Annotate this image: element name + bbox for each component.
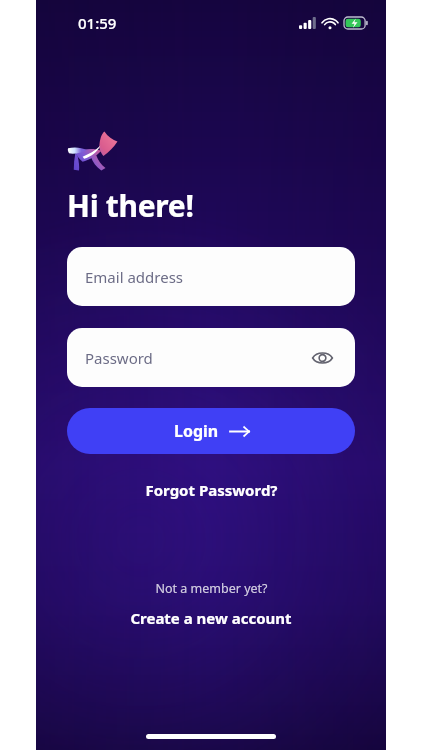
staticText: Not a member yet? bbox=[155, 580, 268, 597]
button[interactable]: Forgot Password? bbox=[135, 476, 288, 504]
button[interactable]: Email address bbox=[67, 247, 355, 306]
button[interactable]: Login bbox=[67, 408, 355, 454]
staticText: Password bbox=[85, 348, 153, 368]
button[interactable]: Show password bbox=[307, 343, 337, 373]
staticText: Login bbox=[174, 420, 219, 442]
staticText: Create a new account bbox=[130, 608, 292, 628]
staticText: Email address bbox=[85, 267, 184, 287]
button[interactable]: Create a new account bbox=[120, 605, 302, 631]
staticText: Forgot Password? bbox=[145, 480, 278, 500]
staticText: 01:59 bbox=[78, 13, 117, 33]
staticText: Hi there! bbox=[67, 185, 194, 226]
button[interactable]: Password bbox=[67, 328, 355, 387]
